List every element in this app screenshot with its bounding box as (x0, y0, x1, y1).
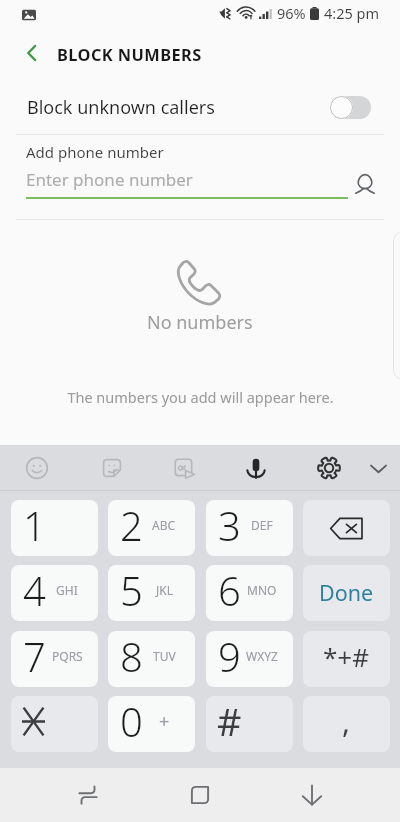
staticText: 7 (23, 631, 46, 683)
button[interactable]: Home (176, 771, 224, 819)
button[interactable]: *+# (303, 631, 390, 687)
staticText: Done (319, 578, 374, 607)
button[interactable]: 7 (11, 631, 98, 687)
staticText: ABC (152, 517, 176, 533)
staticText: GHI (56, 582, 78, 598)
staticText: 2 (120, 500, 143, 552)
staticText: Block unknown callers (27, 95, 215, 120)
staticText: , (342, 701, 351, 742)
staticText: 6 (218, 565, 241, 617)
staticText: JKL (156, 582, 173, 598)
button[interactable]: Keyboard settings (310, 449, 348, 487)
button[interactable]: GIF (165, 449, 203, 487)
staticText: TUV (153, 648, 176, 664)
button[interactable]: , (303, 696, 390, 752)
staticText: 4 (23, 565, 46, 617)
button[interactable]: Voice input (237, 449, 275, 487)
button[interactable]: Add from contacts (350, 169, 379, 199)
button[interactable]: Done (303, 565, 390, 621)
staticText: BLOCK NUMBERS (57, 43, 202, 65)
button[interactable]: 9 (206, 631, 293, 687)
button[interactable]: 4 (11, 565, 98, 621)
staticText: 0 (120, 696, 143, 748)
button[interactable]: Navigate up (10, 31, 54, 75)
staticText: 1 (23, 500, 46, 552)
staticText: MNO (247, 582, 277, 598)
staticText: WXYZ (246, 648, 278, 664)
button[interactable]: 1 (11, 500, 98, 556)
staticText: 5 (120, 565, 143, 617)
button[interactable]: Recent apps (64, 771, 112, 819)
staticText: 8 (120, 631, 143, 683)
button[interactable]: 5 (108, 565, 195, 621)
button[interactable]: Block unknown callers (0, 78, 400, 136)
button[interactable]: Hide keyboard (359, 449, 397, 487)
staticText: 4:25 pm (324, 3, 380, 23)
staticText: # (217, 696, 242, 747)
button[interactable]: Hide keyboard (288, 771, 336, 819)
button[interactable]: Emoji (18, 449, 56, 487)
staticText: + (159, 709, 170, 734)
staticText: Add phone number (26, 142, 164, 162)
staticText: The numbers you add will appear here. (67, 387, 334, 407)
button[interactable]: 2 (108, 500, 195, 556)
button[interactable]: 8 (108, 631, 195, 687)
staticText: PQRS (52, 648, 83, 664)
staticText: Enter phone number (26, 168, 193, 191)
button[interactable]: 0 (108, 696, 195, 752)
staticText: No numbers (147, 310, 253, 335)
button[interactable]: 3 (206, 500, 293, 556)
staticText: DEF (251, 517, 273, 533)
staticText: *+# (323, 639, 369, 674)
staticText: 3 (218, 500, 241, 552)
button[interactable]: Star (11, 696, 98, 752)
staticText: 96% (277, 3, 306, 23)
button[interactable]: Delete (303, 500, 390, 556)
button[interactable]: Stickers (93, 449, 131, 487)
button[interactable]: 6 (206, 565, 293, 621)
button[interactable]: # (206, 696, 293, 752)
staticText: 9 (218, 631, 241, 683)
